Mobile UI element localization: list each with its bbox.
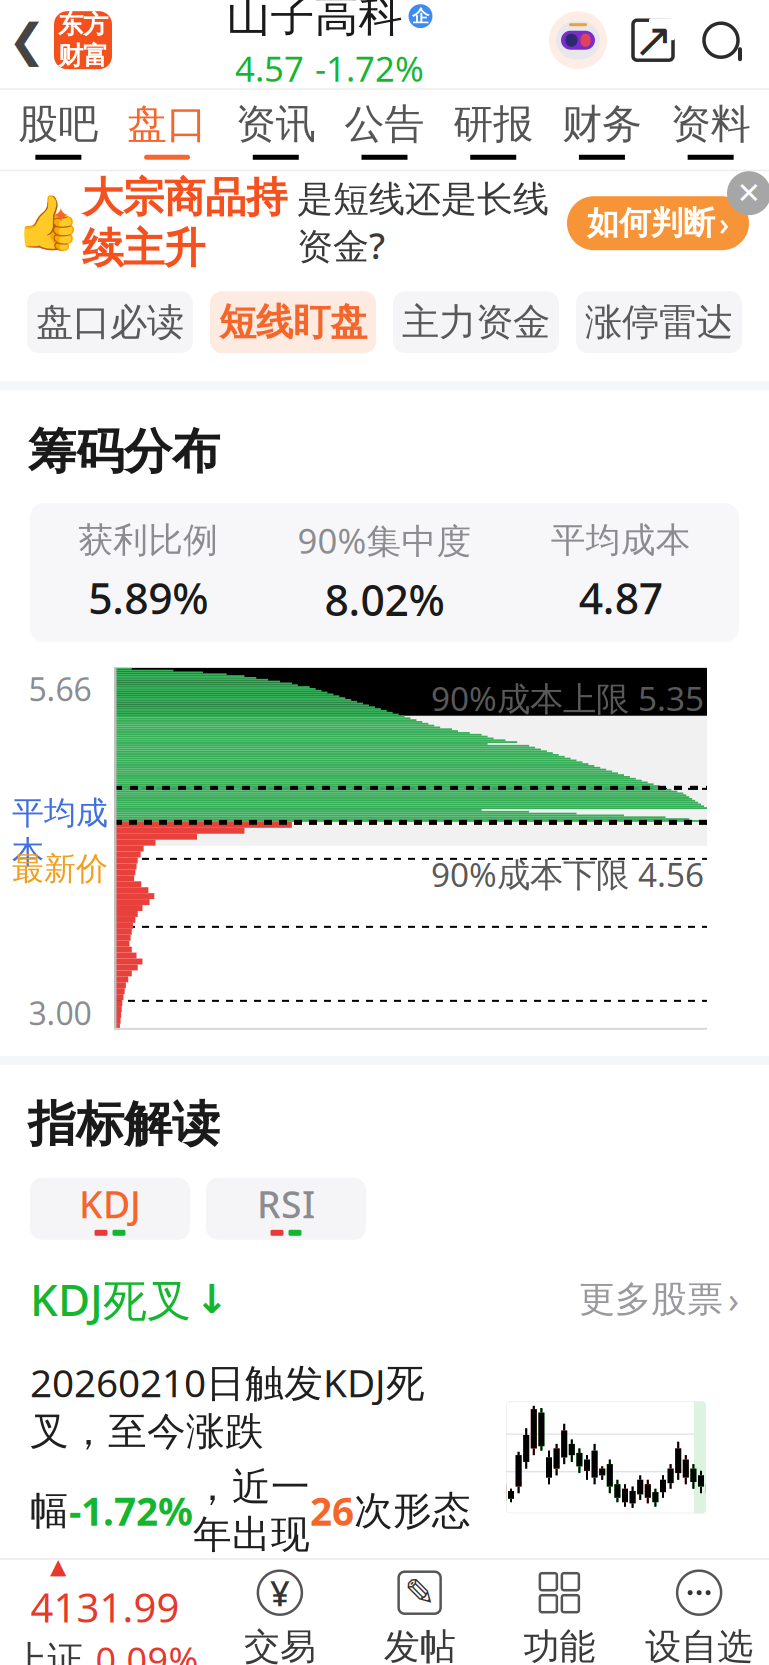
button[interactable]: 盘口 (113, 90, 221, 170)
button[interactable]: 研报 (439, 90, 548, 170)
staticText: ，近一年出现 (193, 1463, 310, 1558)
button[interactable]: 更多股票 (579, 1275, 739, 1323)
staticText: 功能 (523, 1625, 595, 1665)
button[interactable]: Back (0, 0, 54, 80)
staticText: 26 (310, 1485, 354, 1536)
staticText: 20260210日触发KDJ死叉，至今涨跌 (30, 1356, 425, 1455)
staticText: 90%成本上限 5.35 (431, 676, 704, 720)
staticText: 90%集中度 (297, 517, 471, 563)
staticText: ↗ (633, 13, 673, 67)
staticText: 盘口 (127, 100, 207, 149)
staticText: 8.02% (324, 571, 444, 628)
staticText: 发帖 (384, 1625, 456, 1665)
staticText: 短线盯盘 (219, 299, 367, 345)
staticText: -1.72% (315, 45, 424, 91)
staticText: ▲ (50, 1554, 66, 1578)
staticText: 平均成本 (12, 794, 108, 872)
staticText: 4131.99 (30, 1580, 179, 1633)
staticText: 设自选 (645, 1625, 753, 1665)
staticText: ✕ (736, 177, 761, 210)
button[interactable]: 财务 (548, 90, 656, 170)
button[interactable]: 盘口必读 (27, 291, 193, 353)
staticText: 涨停雷达 (585, 299, 733, 345)
staticText: › (719, 202, 729, 244)
staticText: 企 (412, 5, 429, 27)
button[interactable]: ¥ (210, 1560, 350, 1665)
staticText: 最新价 (12, 849, 108, 888)
staticText: 平均成本 (551, 519, 691, 561)
button[interactable]: 资讯 (221, 90, 330, 170)
staticText: 3.00 (28, 992, 91, 1034)
staticText: 资料 (671, 100, 751, 149)
staticText: 5.89% (88, 569, 208, 626)
staticText: 4.57 (235, 45, 304, 91)
staticText: 筹码分布 (28, 422, 220, 481)
button[interactable]: 👍 (0, 171, 769, 275)
button[interactable]: ✎ (350, 1560, 490, 1665)
staticText: 指标解读 (28, 1095, 220, 1154)
button[interactable]: 公告 (330, 90, 439, 170)
staticText: ↓ (195, 1276, 229, 1322)
button[interactable]: AI assistant (547, 9, 609, 71)
staticText: › (728, 1275, 739, 1323)
button[interactable]: 短线盯盘 (210, 291, 376, 353)
staticText: 获利比例 (78, 519, 218, 561)
staticText: ✦ (52, 203, 70, 227)
staticText: -1.72% (69, 1485, 193, 1536)
staticText: 大宗商品持续主升 (82, 172, 287, 274)
staticText: ¥ (270, 1570, 290, 1616)
staticText: 如何判断 (587, 203, 715, 243)
staticText: 幅 (30, 1487, 69, 1535)
staticText: 主力资金 (402, 299, 550, 345)
staticText: 东方 (58, 9, 108, 40)
button[interactable]: 资料 (656, 90, 765, 170)
staticText: 90%成本下限 4.56 (431, 852, 704, 896)
staticText: ❮ (8, 14, 46, 66)
button[interactable]: Close ad (727, 171, 769, 215)
staticText: 交易 (244, 1625, 316, 1665)
staticText: KDJ死叉 (30, 1270, 191, 1328)
staticText: RSI (257, 1179, 315, 1229)
button[interactable]: 功能 (489, 1560, 629, 1665)
button[interactable]: KDJ (30, 1178, 190, 1240)
button[interactable]: ▲ (0, 1560, 210, 1665)
staticText: 上证 (11, 1637, 83, 1665)
button[interactable]: RSI (206, 1178, 366, 1240)
staticText: 4.87 (579, 569, 663, 626)
button[interactable]: Share (629, 16, 677, 64)
button[interactable]: 股吧 (4, 90, 113, 170)
staticText: 👍 (15, 193, 81, 254)
staticText: 是短线还是长线资金? (297, 177, 549, 269)
staticText: 资讯 (236, 100, 316, 149)
staticText: 5.66 (28, 668, 91, 710)
staticText: KDJ (79, 1179, 141, 1229)
staticText: 财务 (562, 100, 642, 149)
button[interactable]: East Money home (54, 11, 112, 69)
staticText: 财富 (58, 40, 108, 71)
staticText: 盘口必读 (36, 299, 184, 345)
staticText: ✎ (404, 1571, 435, 1614)
button[interactable]: 设自选 (629, 1560, 769, 1665)
staticText: 公告 (344, 100, 424, 149)
staticText: 股吧 (18, 100, 98, 149)
staticText: 0.09% (95, 1636, 198, 1665)
button[interactable]: 涨停雷达 (576, 291, 742, 353)
staticText: 山子高科 (226, 0, 402, 43)
button[interactable]: 主力资金 (393, 291, 559, 353)
staticText: 研报 (453, 100, 533, 149)
staticText: 次形态 (354, 1487, 471, 1535)
staticText: 更多股票 (579, 1277, 723, 1321)
button[interactable]: Search (697, 16, 745, 64)
